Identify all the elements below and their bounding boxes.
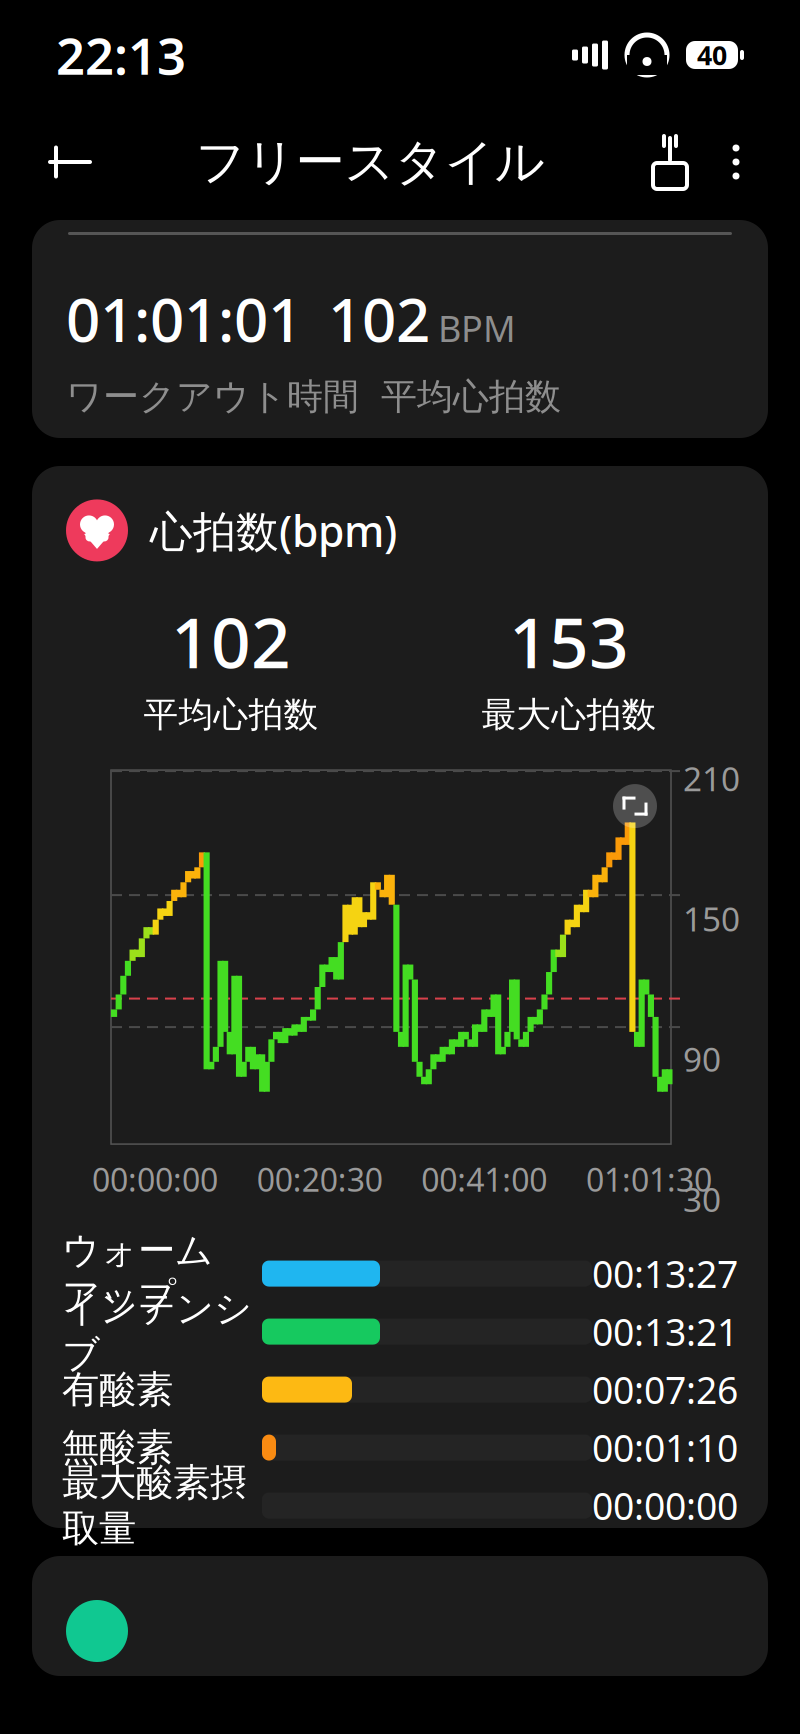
staticText: 150 xyxy=(683,896,740,941)
staticText: 00:13:27 xyxy=(592,1249,738,1298)
staticText: 無酸素 xyxy=(62,1425,173,1470)
staticText: 30 xyxy=(683,1177,721,1221)
staticText: ウォームアップ xyxy=(62,1228,213,1319)
staticText: 最大心拍数 xyxy=(481,693,656,736)
staticText: 00:20:30 xyxy=(257,1158,383,1201)
staticText: フリースタイル xyxy=(195,132,544,192)
staticText: 01:01:01 xyxy=(66,279,302,359)
staticText: 平均心拍数 xyxy=(143,693,318,736)
staticText: 最大酸素摂取量 xyxy=(62,1460,247,1551)
staticText: 90 xyxy=(683,1037,721,1081)
button[interactable]: グラフを拡大 xyxy=(613,784,657,828)
staticText: 00:13:21 xyxy=(592,1307,738,1356)
staticText: 00:41:00 xyxy=(421,1158,547,1201)
staticText: 210 xyxy=(683,756,740,800)
staticText: 102 xyxy=(328,279,430,359)
staticText: BPM xyxy=(438,304,516,352)
staticText: 00:00:00 xyxy=(92,1158,218,1201)
staticText: 102 xyxy=(171,595,291,687)
staticText: 00:01:10 xyxy=(592,1423,738,1472)
staticText: 心拍数(bpm) xyxy=(150,502,397,559)
staticText: 22:13 xyxy=(56,21,186,89)
staticText: 有酸素 xyxy=(62,1367,173,1412)
staticText: 平均心拍数 xyxy=(381,375,561,419)
staticText: インテンシブ xyxy=(62,1286,252,1377)
staticText: 00:00:00 xyxy=(592,1481,738,1530)
button[interactable]: 戻る xyxy=(34,126,106,198)
staticText: 40 xyxy=(697,37,727,73)
button[interactable]: その他 xyxy=(706,126,766,198)
button[interactable]: 共有 xyxy=(634,126,706,198)
staticText: 00:07:26 xyxy=(592,1365,738,1414)
staticText: 01:01:30 xyxy=(586,1158,712,1201)
staticText: ワークアウト時間 xyxy=(66,375,359,419)
staticText: 153 xyxy=(509,595,629,687)
